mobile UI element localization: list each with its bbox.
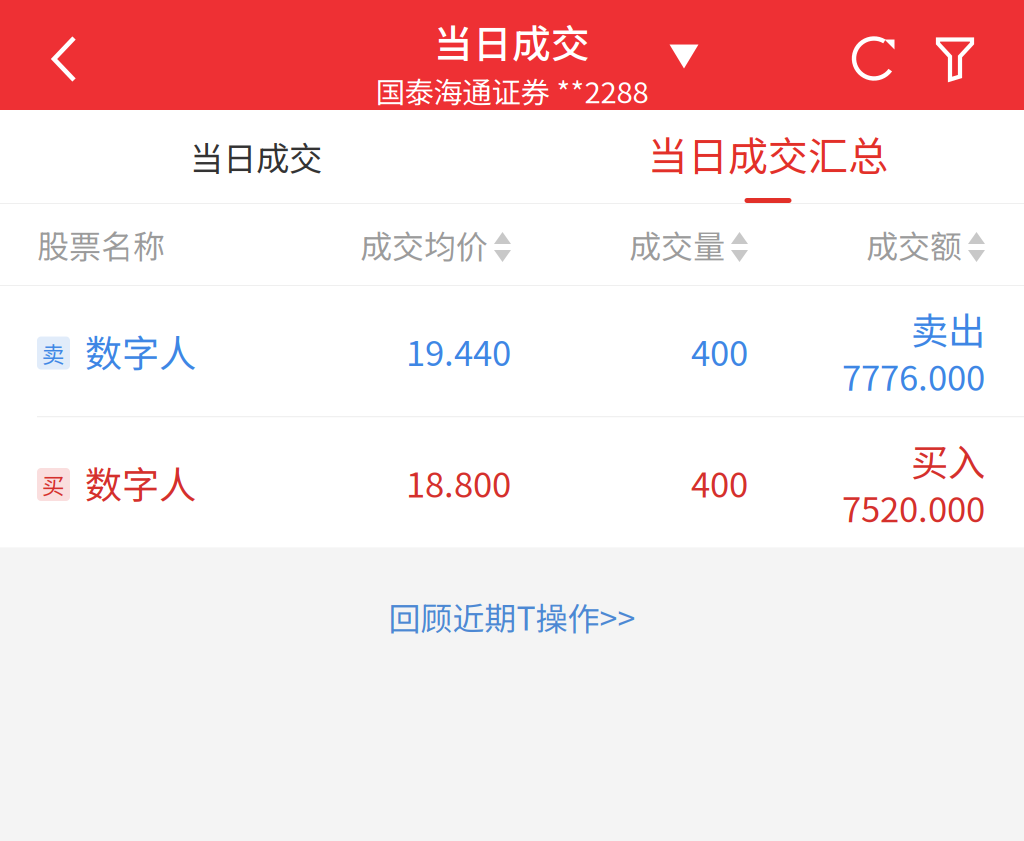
- staticText: 买入: [911, 433, 985, 487]
- staticText: 回顾近期T操作>>: [388, 593, 635, 640]
- button[interactable]: 成交额: [748, 204, 985, 285]
- staticText: 卖: [42, 337, 65, 369]
- staticText: 数字人: [85, 324, 196, 378]
- staticText: 18.800: [406, 457, 511, 508]
- staticText: 19.440: [406, 326, 511, 376]
- button[interactable]: 回顾近期T操作>>: [364, 579, 659, 654]
- staticText: 成交额: [866, 221, 962, 268]
- button[interactable]: 成交量: [511, 204, 748, 285]
- staticText: 当日成交汇总: [648, 124, 888, 182]
- staticText: 国泰海通证券 **2288: [375, 69, 648, 112]
- staticText: 数字人: [85, 455, 196, 510]
- staticText: 7776.000: [842, 350, 985, 401]
- button[interactable]: 当日成交: [325, 0, 698, 110]
- staticText: 成交均价: [360, 221, 488, 268]
- staticText: 400: [691, 457, 748, 508]
- staticText: 成交量: [629, 221, 725, 268]
- staticText: 卖出: [911, 301, 985, 355]
- staticText: 股票名称: [37, 221, 165, 268]
- staticText: 400: [691, 326, 748, 376]
- button[interactable]: 当日成交: [0, 110, 512, 203]
- staticText: 买: [42, 468, 65, 501]
- staticText: 7520.000: [842, 482, 985, 532]
- staticText: 当日成交: [190, 132, 322, 181]
- button[interactable]: 当日成交汇总: [512, 110, 1024, 203]
- button[interactable]: Refresh: [838, 0, 910, 110]
- button[interactable]: Filter: [910, 0, 1000, 110]
- button[interactable]: 成交均价: [260, 204, 511, 285]
- staticText: 当日成交: [434, 13, 590, 69]
- button[interactable]: 卖: [0, 286, 1024, 416]
- button[interactable]: 买: [0, 417, 1024, 547]
- button[interactable]: Back: [0, 0, 128, 110]
